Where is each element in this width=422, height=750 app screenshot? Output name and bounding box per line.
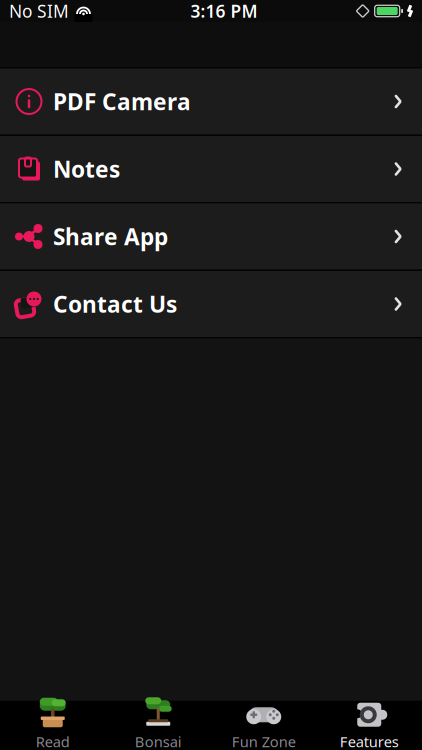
button[interactable]: Share App	[0, 203, 422, 271]
staticText: Bonsai	[135, 732, 182, 750]
button[interactable]: Notes	[0, 136, 422, 203]
staticText: PDF Camera	[53, 86, 191, 116]
staticText: 3:16 PM	[191, 0, 258, 22]
button[interactable]: Read	[0, 700, 105, 750]
staticText: No SIM	[9, 0, 69, 22]
button[interactable]: PDF Camera	[0, 68, 422, 136]
staticText: Share App	[53, 221, 168, 251]
staticText: Fun Zone	[232, 732, 296, 750]
staticText: Notes	[53, 154, 120, 184]
button[interactable]: Contact Us	[0, 271, 422, 338]
button[interactable]: Fun Zone	[211, 700, 316, 750]
button[interactable]: Features	[316, 700, 422, 750]
staticText: Read	[36, 732, 70, 750]
button[interactable]: Bonsai	[105, 700, 211, 750]
staticText: Contact Us	[53, 289, 177, 319]
staticText: Features	[340, 732, 399, 750]
